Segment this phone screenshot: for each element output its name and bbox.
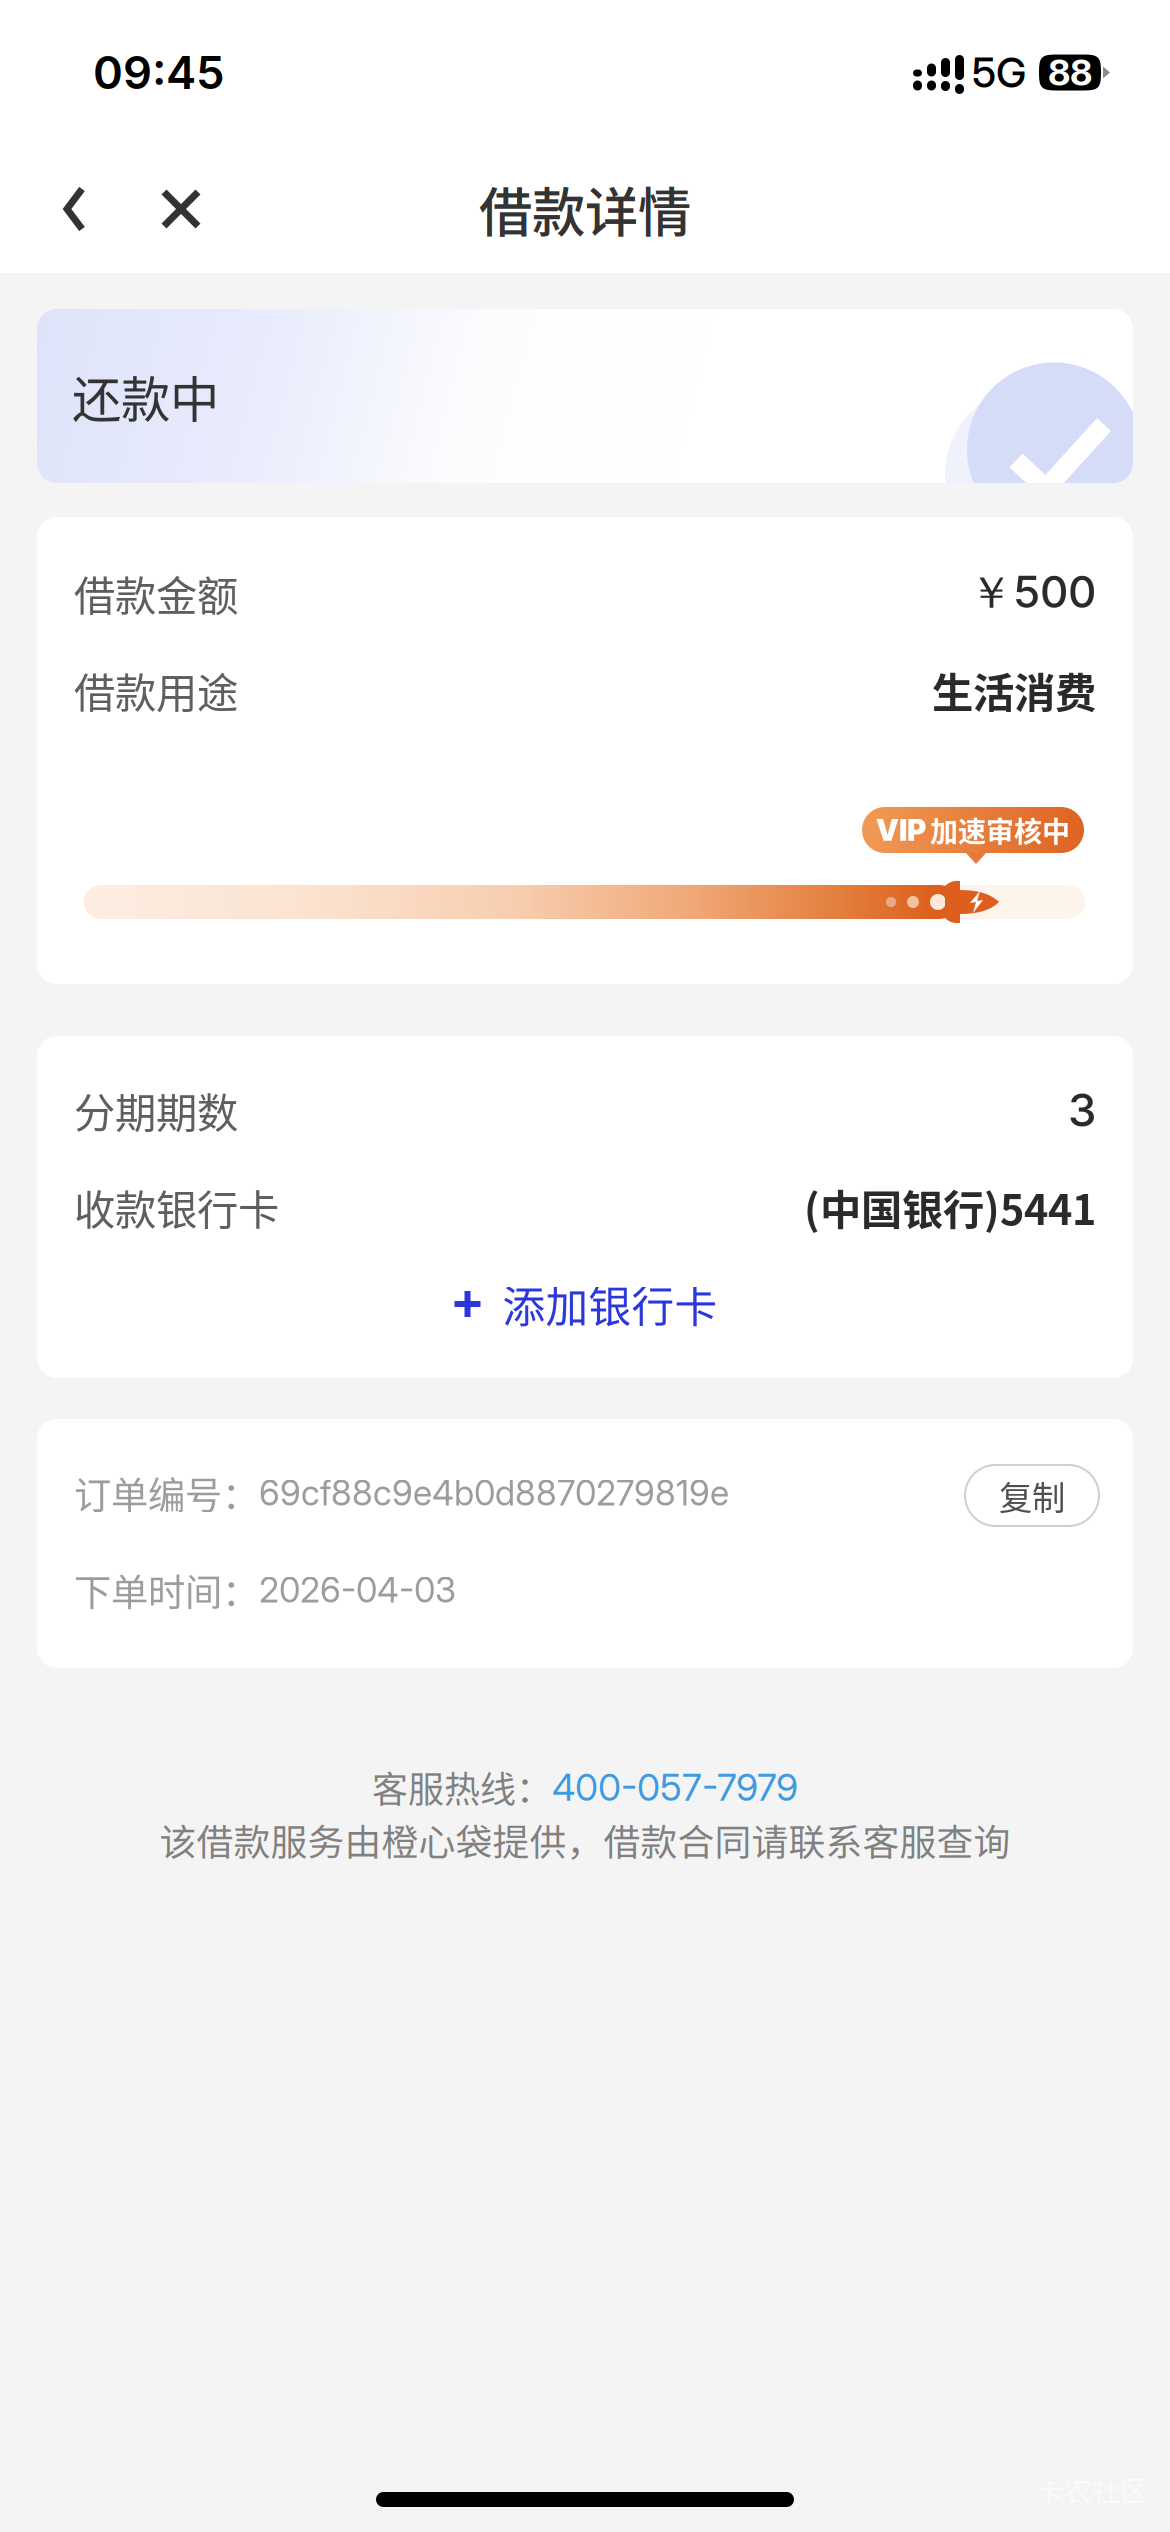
staticText: 88	[1048, 51, 1092, 94]
button[interactable]: 复制	[965, 1460, 1099, 1526]
staticText: 下单时间：	[74, 1563, 259, 1617]
staticText: 添加银行卡	[502, 1273, 717, 1335]
staticText: 借款用途	[74, 660, 238, 720]
staticText: 该借款服务由橙心袋提供，借款合同请联系客服查询	[159, 1813, 1010, 1866]
staticText: 复制	[999, 1471, 1065, 1520]
button[interactable]: Close	[142, 145, 242, 273]
staticText: 5G	[972, 47, 1026, 97]
staticText: 3	[1068, 1083, 1096, 1137]
staticText: 收款银行卡	[74, 1177, 279, 1237]
button[interactable]: Back	[0, 145, 142, 273]
staticText: 400-057-7979	[552, 1764, 798, 1810]
staticText: 订单编号：	[74, 1466, 259, 1520]
staticText: 加速审核中	[930, 810, 1070, 850]
button[interactable]: 400-057-7979	[552, 1764, 798, 1810]
button[interactable]: 添加银行卡	[74, 1271, 1096, 1337]
staticText: 2026-04-03	[259, 1569, 456, 1611]
staticText: 09:45	[93, 45, 225, 100]
staticText: 分期期数	[74, 1080, 238, 1140]
staticText: (中国银行)5441	[804, 1177, 1096, 1237]
staticText: 生活消费	[932, 660, 1096, 720]
staticText: 69cf88c9e4b0d8870279819e	[259, 1472, 729, 1514]
staticText: 借款金额	[74, 563, 238, 623]
staticText: 客服热线：	[372, 1761, 552, 1813]
staticText: ￥500	[969, 565, 1096, 621]
staticText: VIP	[876, 812, 926, 848]
staticText: 借款详情	[479, 170, 691, 248]
staticText: 还款中	[72, 360, 219, 432]
